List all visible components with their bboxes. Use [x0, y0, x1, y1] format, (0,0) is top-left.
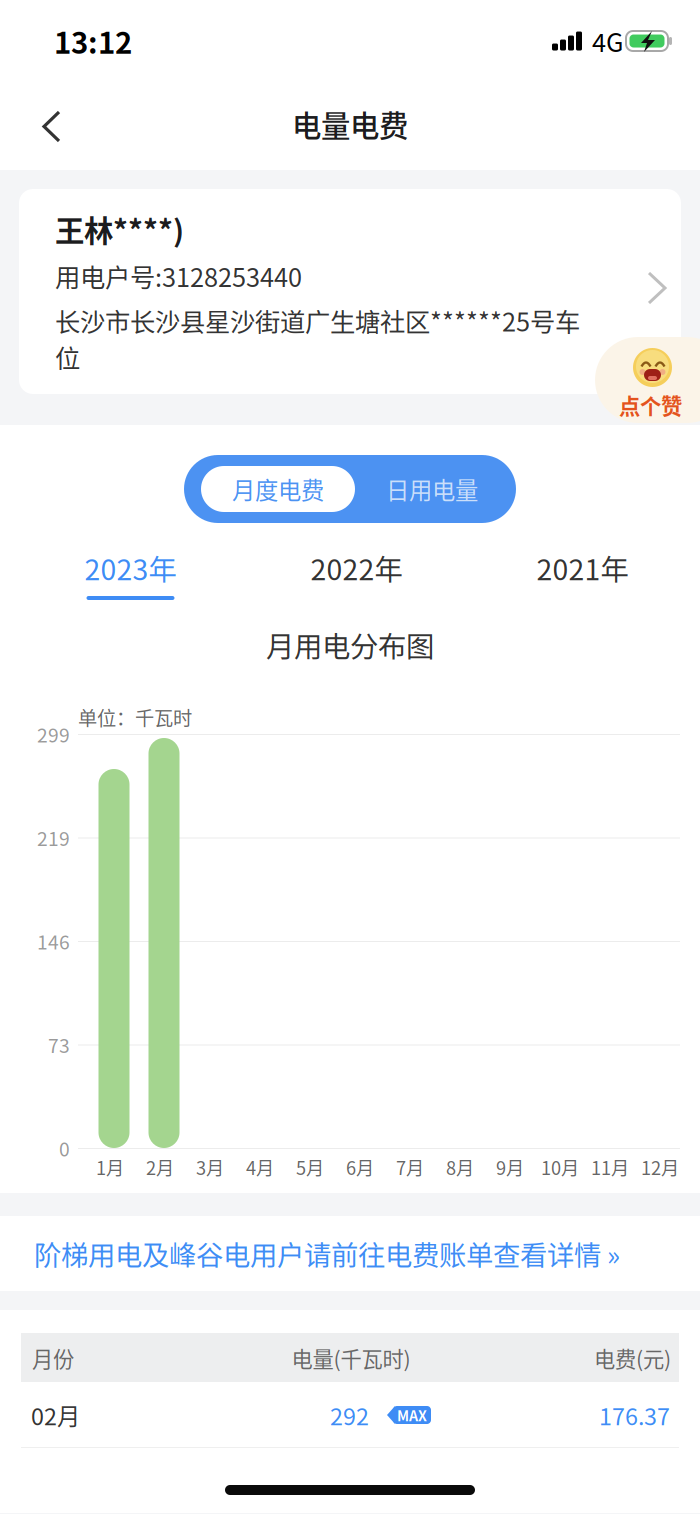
button[interactable]: 日用电量: [367, 466, 497, 512]
staticText: 电量电费: [292, 103, 408, 145]
staticText: 5月: [296, 1154, 324, 1180]
staticText: 13:12: [54, 20, 132, 62]
staticText: 2月: [146, 1154, 174, 1180]
staticText: 月用电分布图: [266, 624, 434, 666]
staticText: 4G: [592, 23, 623, 59]
staticText: 146: [37, 927, 70, 955]
staticText: 9月: [496, 1154, 524, 1180]
staticText: 219: [37, 824, 70, 851]
button[interactable]: 2023年: [17, 545, 243, 603]
staticText: 点个赞: [619, 390, 682, 420]
button[interactable]: 2022年: [243, 545, 469, 603]
staticText: 用电户号:3128253440: [55, 258, 302, 294]
staticText: 1月: [96, 1154, 124, 1180]
staticText: 王林****): [55, 208, 184, 250]
staticText: 3月: [196, 1154, 224, 1180]
staticText: 7月: [396, 1154, 424, 1180]
button[interactable]: 阶梯用电及峰谷电用户请前往电费账单查看详情 »: [0, 1216, 700, 1291]
button[interactable]: 点个赞: [595, 337, 700, 423]
staticText: 月度电费: [232, 472, 324, 506]
button[interactable]: 返回: [30, 95, 104, 159]
staticText: 10月: [541, 1154, 579, 1180]
staticText: 单位：千瓦时: [78, 703, 192, 731]
button[interactable]: 王林****): [19, 189, 681, 394]
staticText: 2021年: [536, 547, 628, 589]
button[interactable]: 月度电费: [201, 466, 355, 512]
staticText: 2022年: [310, 547, 402, 589]
staticText: 长沙市长沙县星沙街道广生塘社区******25号车位: [55, 302, 580, 375]
staticText: 11月: [591, 1154, 629, 1180]
staticText: 176.37: [599, 1398, 670, 1432]
staticText: 电费(元): [594, 1343, 671, 1373]
staticText: 6月: [346, 1154, 374, 1180]
staticText: 292: [330, 1398, 369, 1432]
button[interactable]: 2021年: [469, 545, 695, 603]
staticText: 2023年: [84, 547, 176, 589]
staticText: 电量(千瓦时): [291, 1343, 410, 1373]
staticText: 月份: [32, 1343, 74, 1373]
staticText: 299: [37, 720, 70, 748]
button[interactable]: 02月: [21, 1382, 679, 1448]
staticText: 0: [59, 1134, 70, 1162]
staticText: 73: [48, 1031, 70, 1058]
staticText: 8月: [446, 1154, 474, 1180]
staticText: 12月: [641, 1154, 679, 1180]
staticText: 日用电量: [386, 472, 478, 506]
staticText: 阶梯用电及峰谷电用户请前往电费账单查看详情 »: [34, 1234, 620, 1273]
staticText: MAX: [397, 1405, 427, 1425]
staticText: 4月: [246, 1154, 274, 1180]
staticText: 02月: [31, 1398, 80, 1432]
